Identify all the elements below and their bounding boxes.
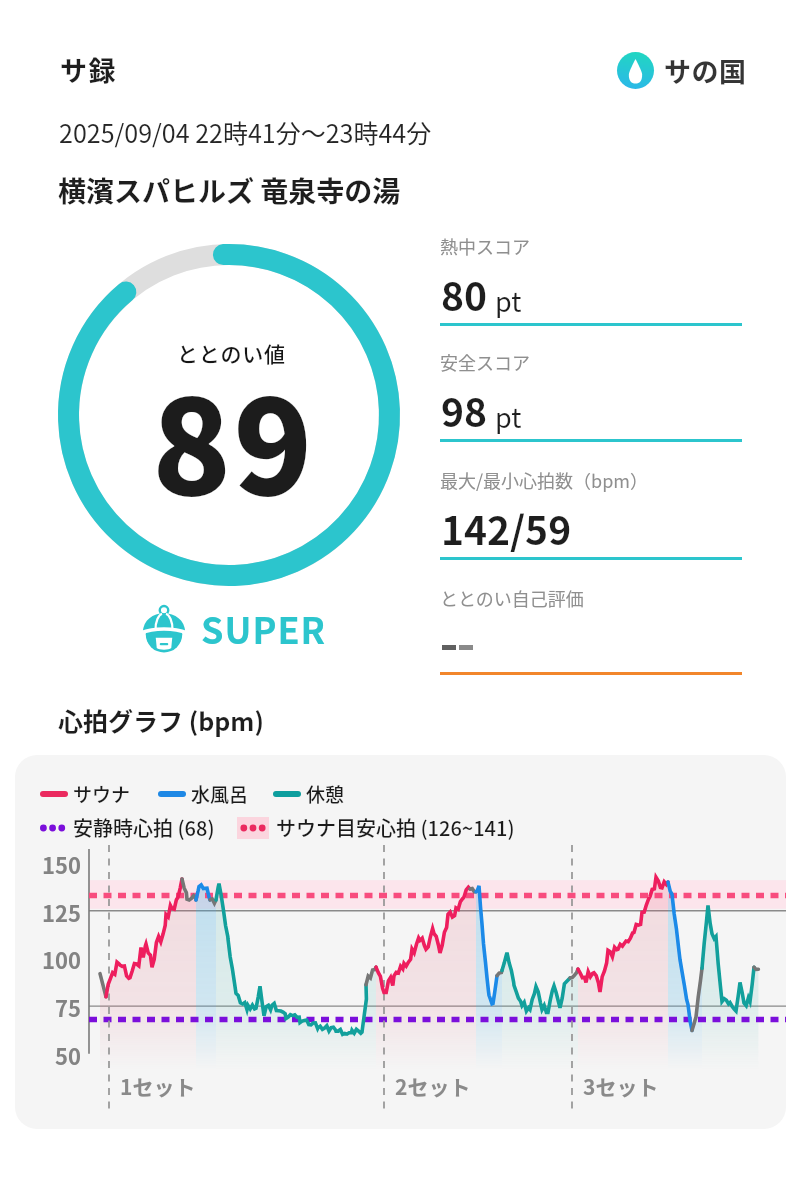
staticText: サウナ xyxy=(73,780,131,808)
button[interactable]: 安全スコア xyxy=(440,349,742,442)
button[interactable]: サウナ xyxy=(15,755,786,1129)
staticText: 75 xyxy=(15,991,81,1023)
button[interactable]: サの国 ロゴ xyxy=(617,51,747,90)
staticText: ととのい自己評価 xyxy=(440,585,584,611)
staticText: 水風呂 xyxy=(191,780,249,808)
staticText: 50 xyxy=(15,1039,81,1071)
staticText: 125 xyxy=(15,896,81,928)
staticText: pt xyxy=(495,397,522,436)
staticText: 最大/最小心拍数（bpm） xyxy=(440,467,649,493)
staticText: 熱中スコア xyxy=(440,233,530,259)
staticText: 150 xyxy=(15,848,81,880)
staticText: サの国 xyxy=(664,51,747,90)
staticText: 2025/09/04 22時41分〜23時44分 xyxy=(59,114,432,150)
staticText: 80 xyxy=(441,266,488,322)
staticText: 98 xyxy=(441,382,488,438)
staticText: pt xyxy=(495,281,522,320)
staticText: 安全スコア xyxy=(440,349,530,375)
staticText: 100 xyxy=(15,943,81,975)
staticText: 3セット xyxy=(583,1071,659,1101)
staticText: サ録 xyxy=(60,50,117,89)
staticText: 心拍グラフ (bpm) xyxy=(58,702,264,738)
button[interactable]: 最大/最小心拍数（bpm） xyxy=(440,467,742,560)
staticText: SUPER xyxy=(201,602,327,654)
button[interactable]: SUPER xyxy=(139,602,327,654)
button[interactable]: ととのい自己評価 xyxy=(440,585,742,675)
staticText: 横濱スパヒルズ 竜泉寺の湯 xyxy=(58,170,401,211)
staticText: 1セット xyxy=(120,1071,196,1101)
staticText: ととのい値 xyxy=(177,338,286,368)
staticText: 142/59 xyxy=(441,500,572,556)
button[interactable]: 熱中スコア xyxy=(440,233,742,326)
staticText: サウナ目安心拍 (126~141) xyxy=(276,813,515,842)
staticText: 89 xyxy=(152,344,315,532)
staticText: 安静時心拍 (68) xyxy=(73,813,215,842)
staticText: 2セット xyxy=(395,1071,471,1101)
staticText: 休憩 xyxy=(306,780,345,808)
